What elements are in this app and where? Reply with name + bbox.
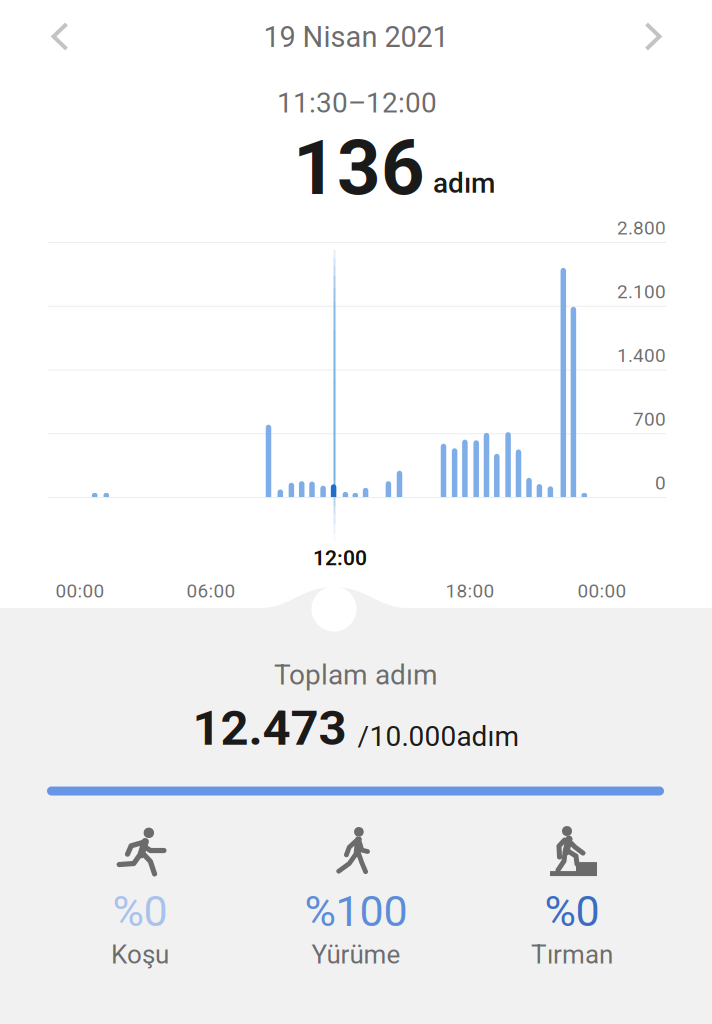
staticText: 00:00 [577,580,626,602]
staticText: 12.473 [192,699,346,757]
staticText: 136 [293,123,425,213]
staticText: adım [433,167,495,199]
button[interactable]: %100 [248,824,464,970]
staticText: Tırman [531,939,613,970]
staticText: 12:00 [313,546,367,570]
button[interactable]: %0 [32,824,248,970]
button[interactable]: Next day [621,0,685,73]
staticText: 0 [655,472,666,494]
staticText: Yürüme [311,939,400,970]
staticText: 11:30–12:00 [277,87,437,119]
staticText: 19 Nisan 2021 [263,20,448,54]
staticText: %0 [544,886,599,936]
staticText: 2.800 [617,217,666,239]
staticText: %100 [304,886,407,936]
staticText: 06:00 [186,580,235,602]
staticText: 00:00 [55,580,104,602]
staticText: %0 [112,886,167,936]
staticText: Koşu [111,939,169,970]
button[interactable]: Previous day [28,0,92,73]
button[interactable]: %0 [464,824,680,970]
staticText: 1.400 [617,344,666,367]
staticText: 18:00 [445,580,494,602]
staticText: 700 [633,408,666,430]
staticText: 2.100 [617,281,666,303]
staticText: Toplam adım [274,659,438,691]
staticText: /10.000adım [357,720,519,753]
